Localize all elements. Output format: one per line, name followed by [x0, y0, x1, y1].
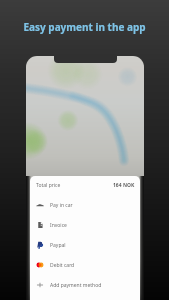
- button[interactable]: Pay in car: [30, 195, 140, 215]
- staticText: Total price: [36, 182, 61, 189]
- button[interactable]: Paypal: [30, 235, 140, 255]
- staticText: Paypal: [50, 242, 66, 249]
- button[interactable]: Add payment method: [30, 275, 140, 295]
- staticText: 164 NOK: [113, 182, 135, 189]
- staticText: Pay in car: [50, 202, 73, 209]
- button[interactable]: Debit card: [30, 255, 140, 275]
- staticText: Add payment method: [50, 282, 102, 289]
- staticText: Debit card: [50, 262, 75, 269]
- button[interactable]: Invoice: [30, 215, 140, 235]
- staticText: Invoice: [50, 222, 67, 229]
- staticText: Easy payment in the app: [0, 20, 169, 34]
